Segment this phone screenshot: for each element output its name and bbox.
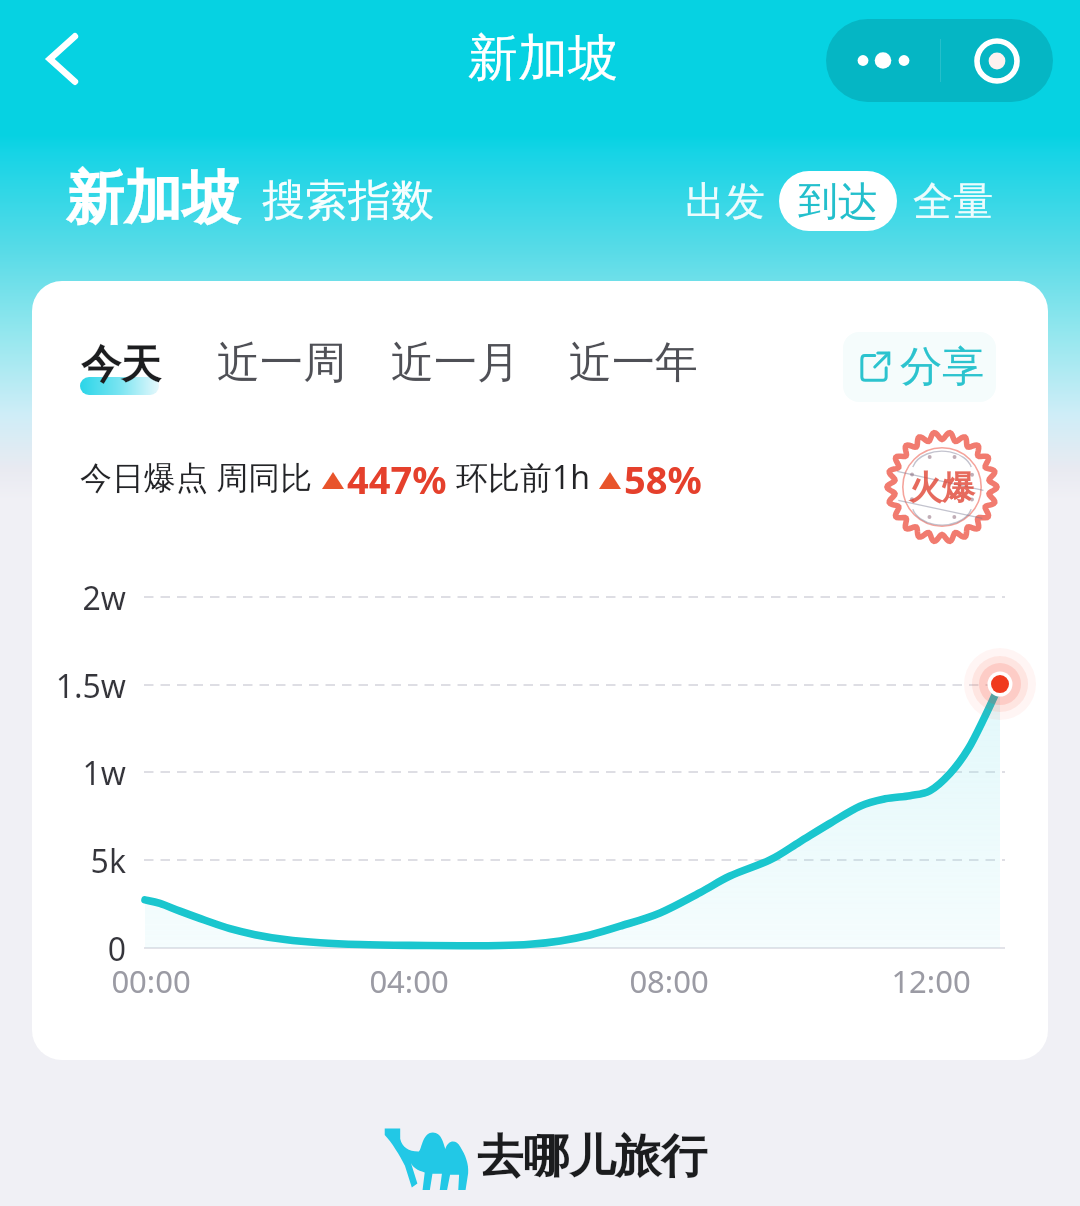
staticText: 近一年: [569, 336, 698, 390]
staticText: 58%: [624, 453, 702, 501]
staticText: 1.5w: [32, 664, 126, 708]
staticText: 04:00: [339, 960, 479, 1002]
staticText: 新加坡: [468, 27, 618, 90]
staticText: 08:00: [599, 960, 739, 1002]
staticText: 到达: [798, 176, 878, 226]
staticText: 分享: [900, 341, 984, 394]
button[interactable]: Back: [28, 25, 96, 93]
button[interactable]: 分享: [843, 332, 996, 402]
staticText: 近一月: [391, 336, 520, 390]
staticText: 环比前1h: [456, 455, 591, 499]
staticText: 5k: [32, 839, 126, 883]
button[interactable]: 今天: [41, 338, 201, 416]
staticText: 今日爆点 周同比: [80, 455, 313, 499]
staticText: 去哪儿旅行: [477, 1128, 707, 1186]
staticText: 新加坡: [66, 162, 240, 235]
button[interactable]: 出发: [675, 171, 775, 231]
button[interactable]: 近一月: [386, 333, 524, 393]
staticText: 出发: [685, 176, 765, 226]
staticText: 447%: [347, 453, 447, 501]
button[interactable]: 近一年: [564, 333, 702, 393]
button[interactable]: 全量: [903, 171, 1003, 231]
staticText: 全量: [913, 176, 993, 226]
staticText: 近一周: [217, 336, 346, 390]
staticText: 00:00: [81, 960, 221, 1002]
button[interactable]: 到达: [779, 171, 897, 231]
button[interactable]: More options: [826, 19, 940, 102]
staticText: 火爆: [909, 467, 975, 509]
staticText: 2w: [32, 576, 126, 620]
staticText: 搜索指数: [262, 174, 434, 228]
staticText: 今天: [81, 339, 161, 389]
button[interactable]: 近一周: [212, 333, 350, 393]
button[interactable]: Close mini program: [941, 19, 1053, 102]
staticText: 0: [32, 927, 126, 971]
staticText: 12:00: [861, 960, 1001, 1002]
staticText: 1w: [32, 751, 126, 795]
